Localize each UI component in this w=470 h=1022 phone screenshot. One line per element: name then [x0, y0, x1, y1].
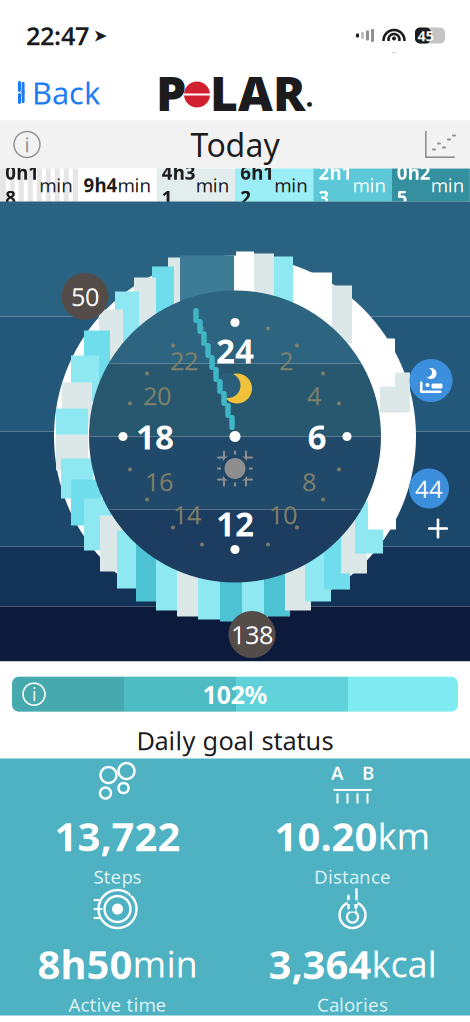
button[interactable]: Information	[0, 123, 54, 166]
staticText: Daily goal status	[136, 724, 333, 757]
staticText: 20	[143, 379, 171, 412]
staticText: 8h50	[37, 937, 132, 990]
staticText: 138	[231, 618, 273, 651]
staticText: 16	[145, 465, 173, 498]
button[interactable]: 50	[61, 273, 108, 320]
staticText: min	[39, 173, 73, 197]
staticText: min	[132, 940, 197, 987]
button[interactable]: 8h50	[0, 887, 235, 1015]
staticText: A	[331, 760, 344, 785]
staticText: 6h12	[240, 160, 274, 210]
staticText: 22:47	[26, 19, 89, 52]
staticText: i	[24, 131, 29, 158]
staticText: 0h25	[397, 160, 431, 210]
staticText: Active time	[68, 992, 166, 1017]
button[interactable]: 9h4	[78, 168, 157, 201]
button[interactable]: Sleep	[409, 359, 452, 402]
staticText: min	[117, 173, 151, 197]
staticText: Distance	[314, 864, 391, 889]
staticText: km	[377, 812, 430, 859]
button[interactable]: 13,722	[0, 759, 235, 887]
staticText: B	[362, 760, 374, 785]
button[interactable]: 4h31	[157, 168, 235, 201]
staticText: LAR	[210, 61, 305, 124]
staticText: 8	[302, 465, 316, 498]
button[interactable]: 0h18	[0, 168, 78, 201]
staticText: Steps	[93, 864, 141, 889]
staticText: 10.20	[274, 809, 377, 862]
staticText: 45	[417, 26, 433, 45]
staticText: min	[431, 173, 465, 197]
button[interactable]: 102%	[12, 677, 458, 712]
staticText: 3,364	[268, 937, 371, 990]
staticText: ➤	[93, 26, 108, 45]
staticText: 4	[307, 379, 321, 412]
staticText: P	[156, 61, 186, 124]
button[interactable]: 44	[409, 468, 449, 508]
staticText: 102%	[202, 677, 267, 711]
button[interactable]: Trends	[410, 122, 470, 166]
button[interactable]: 3,364	[235, 887, 470, 1015]
staticText: 0h18	[5, 160, 39, 210]
staticText: kcal	[371, 940, 436, 987]
staticText: min	[274, 173, 308, 197]
staticText: 6	[307, 414, 326, 459]
button[interactable]: 138	[228, 611, 275, 658]
staticText: i	[32, 683, 36, 706]
button[interactable]: 2h13	[313, 168, 392, 201]
button[interactable]: 6h12	[235, 168, 313, 201]
staticText: 12	[216, 501, 254, 546]
staticText: .	[306, 82, 313, 113]
button[interactable]: 0h25	[392, 168, 470, 201]
staticText: Calories	[317, 992, 388, 1017]
staticText: 2	[279, 344, 293, 377]
staticText: 18	[136, 414, 174, 459]
staticText: 2h13	[318, 160, 352, 210]
staticText: 50	[71, 280, 99, 313]
staticText: 22	[170, 344, 198, 377]
staticText: 4h31	[162, 160, 196, 210]
staticText: 9h4	[83, 173, 117, 197]
staticText: Back	[32, 72, 100, 113]
staticText: 13,722	[54, 809, 180, 862]
staticText: 24	[216, 328, 254, 373]
button[interactable]: Back	[0, 63, 110, 122]
staticText: min	[352, 173, 386, 197]
button[interactable]: A	[235, 759, 470, 887]
staticText: 10	[269, 498, 297, 531]
staticText: min	[196, 173, 230, 197]
staticText: Today	[190, 123, 279, 166]
staticText: 44	[415, 473, 443, 504]
staticText: 14	[173, 498, 201, 531]
